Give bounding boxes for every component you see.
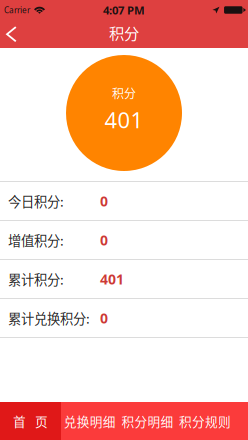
staticText: Carrier: [4, 4, 30, 16]
staticText: 今日积分:: [8, 191, 64, 211]
staticText: 积分: [112, 84, 136, 102]
staticText: 累计积分:: [8, 269, 64, 289]
staticText: 4:07 PM: [103, 2, 145, 18]
staticText: 0: [100, 191, 108, 211]
staticText: 兑换明细: [64, 412, 116, 430]
staticText: 积分: [109, 21, 139, 44]
staticText: 0: [100, 308, 108, 328]
staticText: 累计兑换积分:: [8, 308, 90, 328]
staticText: 0: [100, 230, 108, 250]
staticText: 积分明细: [121, 412, 173, 430]
button[interactable]: 积分规则: [176, 402, 234, 440]
staticText: 首 页: [13, 412, 48, 430]
staticText: 401: [100, 269, 124, 289]
button[interactable]: 兑换明细: [61, 402, 119, 440]
staticText: 积分规则: [179, 412, 231, 430]
staticText: 401: [104, 105, 143, 135]
button[interactable]: 积分明细: [119, 402, 176, 440]
button[interactable]: Back: [0, 20, 27, 48]
staticText: 增值积分:: [8, 230, 64, 250]
button[interactable]: 首 页: [0, 402, 61, 440]
